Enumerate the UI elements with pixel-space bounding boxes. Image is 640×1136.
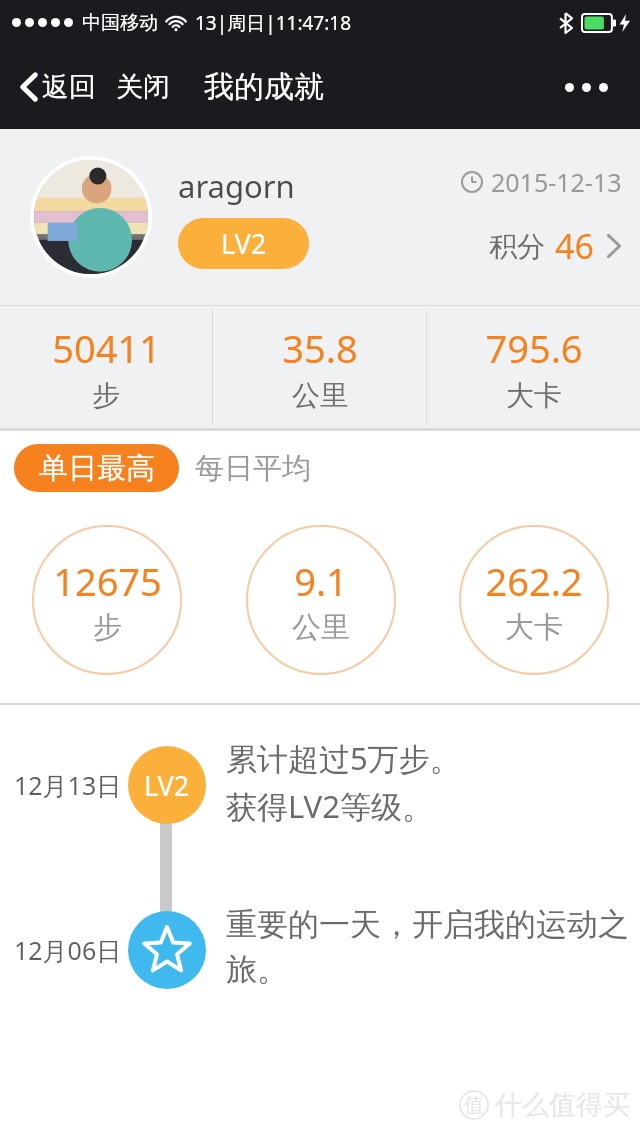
staticText: 12675 — [53, 555, 162, 607]
staticText: aragorn — [178, 165, 295, 207]
button[interactable]: 关闭 — [112, 62, 174, 112]
staticText: 262.2 — [485, 555, 583, 607]
staticText: 35.8 — [282, 322, 358, 374]
staticText: 积分 — [489, 229, 545, 264]
button[interactable]: 12675 — [32, 525, 182, 675]
button[interactable]: 12月13日 — [0, 737, 640, 833]
staticText: 大卡 — [506, 378, 562, 413]
staticText: 获得LV2等级。 — [226, 785, 433, 827]
staticText: 公里 — [292, 378, 348, 413]
button[interactable]: 9.1 — [246, 525, 396, 675]
other: Star achievement — [128, 911, 206, 989]
staticText: 关闭 — [116, 70, 170, 104]
staticText: 大卡 — [505, 609, 563, 646]
staticText: 2015-12-13 — [491, 165, 622, 199]
button[interactable]: LV2 — [178, 218, 309, 269]
staticText: 什么值得买 — [495, 1088, 630, 1122]
staticText: 12月13日 — [14, 768, 122, 802]
staticText: 50411 — [52, 322, 161, 374]
staticText: 795.6 — [485, 322, 583, 374]
button[interactable]: 12月06日 — [0, 905, 640, 995]
button[interactable]: 795.6 — [427, 306, 640, 428]
staticText: 累计超过5万步。 — [226, 737, 461, 779]
staticText: 返回 — [42, 70, 96, 104]
staticText: 旅。 — [226, 950, 288, 989]
button[interactable]: 35.8 — [213, 306, 426, 428]
staticText: 46 — [555, 223, 594, 269]
staticText: 步 — [93, 609, 122, 646]
button[interactable]: aragorn — [0, 129, 640, 305]
button[interactable]: 262.2 — [459, 525, 609, 675]
staticText: 重要的一天，开启我的运动之 — [226, 905, 629, 944]
button[interactable]: 每日平均 — [179, 442, 327, 495]
staticText: 每日平均 — [195, 450, 311, 487]
staticText: 9.1 — [294, 555, 348, 607]
button[interactable]: More options — [555, 69, 618, 106]
staticText: LV2 — [221, 225, 267, 262]
staticText: 中国移动 — [82, 11, 158, 35]
staticText: 12月06日 — [14, 933, 122, 967]
button[interactable]: 单日最高 — [14, 444, 179, 492]
staticText: 步 — [92, 378, 120, 413]
button[interactable]: 返回 — [16, 62, 100, 112]
staticText: 单日最高 — [39, 450, 155, 487]
staticText: 我的成就 — [204, 68, 324, 106]
staticText: 值 — [464, 1093, 484, 1118]
staticText: 公里 — [292, 609, 350, 646]
staticText: 13|周日|11:47:18 — [195, 10, 352, 36]
button[interactable]: 50411 — [0, 306, 212, 428]
staticText: LV2 — [144, 767, 190, 804]
